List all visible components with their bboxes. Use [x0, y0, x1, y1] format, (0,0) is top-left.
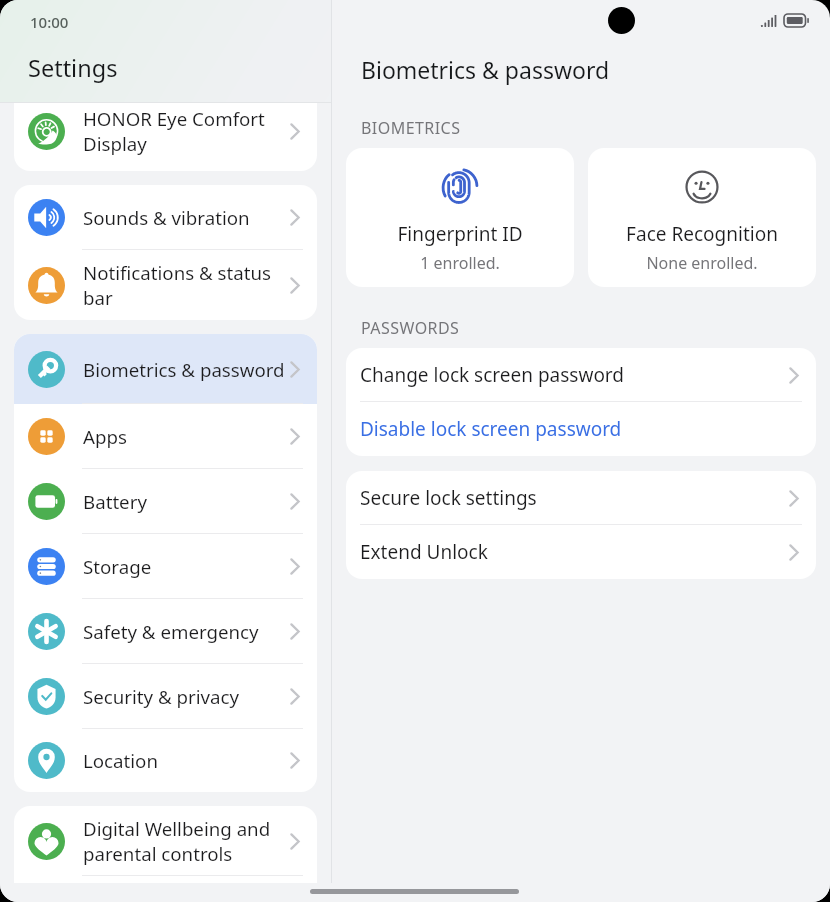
staticText: Notifications & status bar — [83, 260, 290, 310]
staticText: Location — [83, 748, 290, 773]
staticText: Safety & emergency — [83, 619, 290, 644]
button[interactable]: Extend Unlock — [346, 525, 816, 579]
button[interactable]: Security & privacy — [14, 664, 317, 729]
staticText: Face Recognition — [626, 221, 778, 247]
staticText: 10:00 — [30, 12, 69, 32]
staticText: Settings — [28, 52, 118, 84]
staticText: Biometrics & password — [83, 357, 290, 382]
staticText: PASSWORDS — [361, 317, 460, 339]
staticText: Storage — [83, 554, 290, 579]
button[interactable]: Notifications & status bar — [14, 250, 317, 320]
button[interactable]: Biometrics & password — [14, 334, 317, 404]
button[interactable]: Disable lock screen password — [346, 402, 816, 456]
staticText: HONOR Eye Comfort Display — [83, 106, 290, 156]
button[interactable]: Location — [14, 729, 317, 792]
button[interactable]: Fingerprint ID — [346, 148, 574, 287]
staticText: Biometrics & password — [361, 54, 610, 85]
staticText: Fingerprint ID — [397, 221, 523, 247]
button[interactable]: Apps — [14, 404, 317, 469]
staticText: 1 enrolled. — [420, 252, 500, 274]
button[interactable]: Sounds & vibration — [14, 185, 317, 250]
staticText: Security & privacy — [83, 684, 290, 709]
button[interactable]: Battery — [14, 469, 317, 534]
button[interactable]: Secure lock settings — [346, 471, 816, 525]
staticText: Disable lock screen password — [360, 416, 799, 442]
staticText: Change lock screen password — [360, 362, 789, 388]
staticText: Extend Unlock — [360, 539, 789, 565]
button[interactable]: Safety & emergency — [14, 599, 317, 664]
staticText: BIOMETRICS — [361, 117, 461, 139]
staticText: Digital Wellbeing and parental controls — [83, 816, 290, 866]
staticText: Sounds & vibration — [83, 205, 290, 230]
staticText: Battery — [83, 489, 290, 514]
staticText: None enrolled. — [646, 252, 758, 274]
button[interactable]: HONOR Eye Comfort Display — [14, 103, 317, 171]
button[interactable]: Face Recognition — [588, 148, 816, 287]
button[interactable]: Change lock screen password — [346, 348, 816, 402]
button[interactable]: Digital Wellbeing and parental controls — [14, 806, 317, 876]
staticText: Apps — [83, 424, 290, 449]
button[interactable]: Storage — [14, 534, 317, 599]
staticText: Secure lock settings — [360, 485, 789, 511]
